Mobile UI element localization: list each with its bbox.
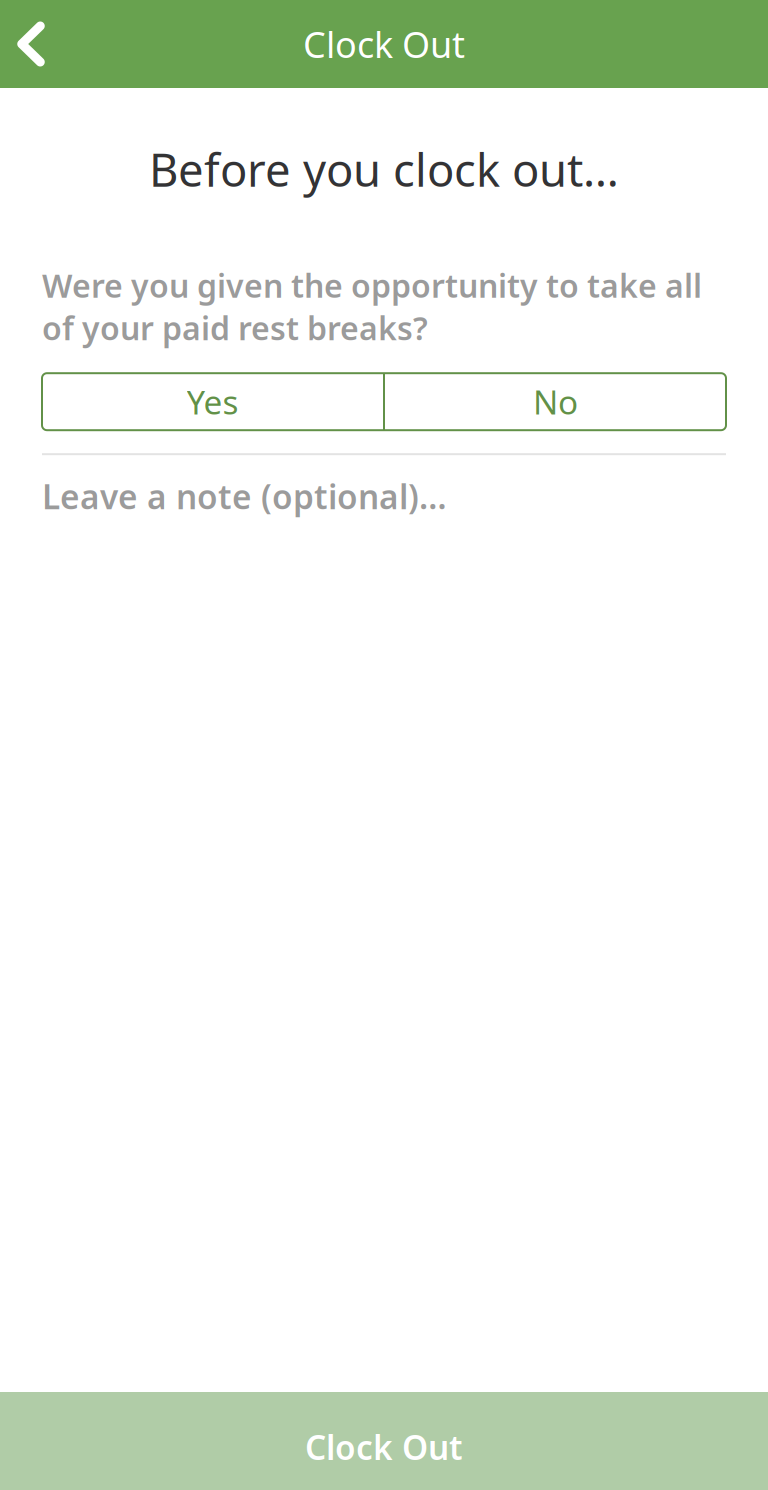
staticText: No: [533, 380, 578, 424]
staticText: Were you given the opportunity to take a…: [42, 264, 702, 349]
staticText: Before you clock out…: [149, 139, 619, 199]
button[interactable]: Clock Out: [0, 1392, 768, 1490]
button[interactable]: Back: [0, 0, 62, 88]
staticText: Yes: [186, 380, 238, 424]
staticText: Clock Out: [303, 20, 465, 68]
staticText: Clock Out: [305, 1425, 463, 1469]
button[interactable]: Leave a note (optional)…: [0, 455, 768, 924]
button[interactable]: No: [385, 373, 726, 430]
staticText: Leave a note (optional)…: [42, 474, 447, 518]
button[interactable]: Yes: [42, 373, 383, 430]
